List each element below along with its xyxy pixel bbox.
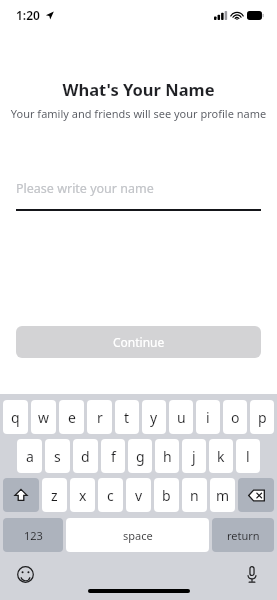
- button[interactable]: z: [42, 478, 67, 512]
- button[interactable]: h: [155, 439, 179, 473]
- button[interactable]: return: [212, 518, 274, 552]
- button[interactable]: n: [182, 478, 207, 512]
- staticText: z: [51, 486, 58, 505]
- staticText: o: [231, 408, 240, 427]
- staticText: v: [135, 486, 143, 505]
- button[interactable]: u: [169, 400, 193, 434]
- button[interactable]: m: [210, 478, 235, 512]
- button[interactable]: o: [223, 400, 247, 434]
- button[interactable]: Shift: [3, 478, 39, 512]
- button[interactable]: e: [59, 400, 84, 434]
- button[interactable]: r: [87, 400, 112, 434]
- staticText: s: [54, 447, 61, 466]
- staticText: r: [97, 408, 103, 427]
- button[interactable]: v: [126, 478, 151, 512]
- staticText: 123: [24, 528, 43, 543]
- staticText: l: [246, 447, 250, 466]
- button[interactable]: Continue: [16, 326, 261, 358]
- staticText: t: [124, 408, 130, 427]
- button[interactable]: b: [154, 478, 179, 512]
- staticText: y: [150, 408, 158, 427]
- button[interactable]: Backspace: [238, 478, 274, 512]
- staticText: b: [162, 486, 171, 505]
- staticText: space: [123, 528, 153, 543]
- staticText: j: [192, 447, 196, 466]
- staticText: m: [216, 486, 230, 505]
- staticText: p: [258, 408, 267, 427]
- staticText: What's Your Name: [0, 78, 277, 100]
- staticText: d: [81, 447, 90, 466]
- button[interactable]: s: [45, 439, 70, 473]
- staticText: 1:20: [16, 7, 40, 23]
- staticText: w: [38, 408, 50, 427]
- button[interactable]: a: [17, 439, 42, 473]
- button[interactable]: Please write your name: [16, 180, 261, 211]
- button[interactable]: x: [70, 478, 95, 512]
- button[interactable]: space: [66, 518, 209, 552]
- button[interactable]: p: [250, 400, 274, 434]
- staticText: i: [206, 408, 210, 427]
- button[interactable]: Voice input: [241, 563, 263, 585]
- staticText: Continue: [113, 334, 165, 350]
- button[interactable]: j: [182, 439, 206, 473]
- staticText: a: [26, 447, 34, 466]
- button[interactable]: Emoji: [14, 563, 36, 585]
- button[interactable]: f: [101, 439, 125, 473]
- button[interactable]: g: [128, 439, 152, 473]
- button[interactable]: t: [115, 400, 139, 434]
- staticText: x: [79, 486, 87, 505]
- button[interactable]: q: [3, 400, 28, 434]
- button[interactable]: d: [73, 439, 98, 473]
- staticText: h: [163, 447, 172, 466]
- staticText: Your family and friends will see your pr…: [0, 106, 277, 121]
- button[interactable]: 123: [3, 518, 63, 552]
- button[interactable]: y: [142, 400, 166, 434]
- button[interactable]: w: [31, 400, 56, 434]
- staticText: Please write your name: [16, 180, 154, 197]
- staticText: k: [217, 447, 225, 466]
- staticText: n: [190, 486, 199, 505]
- button[interactable]: i: [196, 400, 220, 434]
- staticText: q: [11, 408, 20, 427]
- button[interactable]: c: [98, 478, 123, 512]
- staticText: f: [111, 447, 116, 466]
- staticText: return: [227, 528, 260, 543]
- staticText: g: [136, 447, 145, 466]
- button[interactable]: k: [209, 439, 233, 473]
- staticText: u: [177, 408, 186, 427]
- staticText: c: [107, 486, 114, 505]
- staticText: e: [68, 408, 76, 427]
- button[interactable]: l: [236, 439, 260, 473]
